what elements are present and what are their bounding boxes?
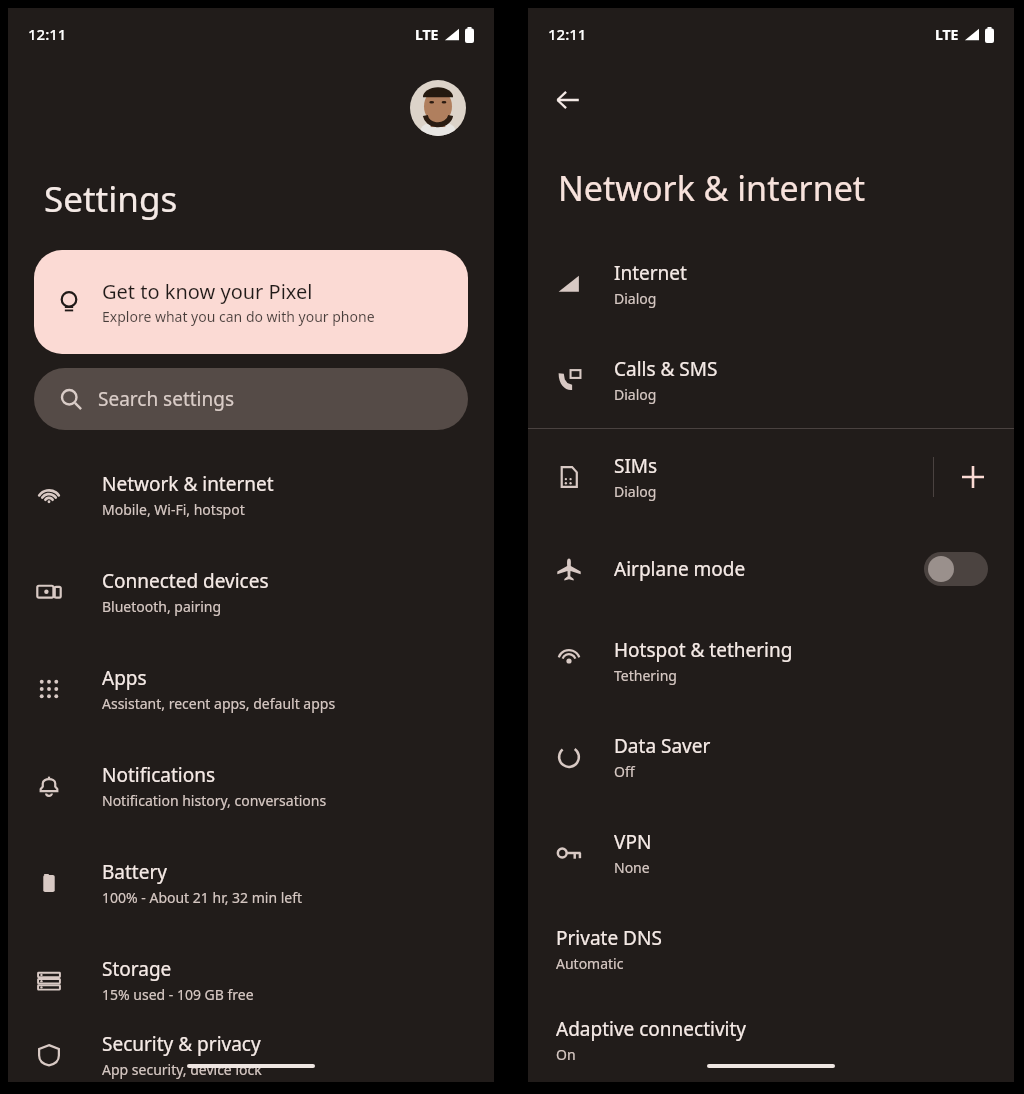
- staticText: Get to know your Pixel: [102, 278, 313, 305]
- button[interactable]: Search settings: [34, 368, 468, 430]
- button[interactable]: Airplane mode: [528, 525, 1014, 613]
- button[interactable]: Hotspot & tethering: [528, 613, 1014, 709]
- button[interactable]: Notifications: [8, 737, 494, 834]
- staticText: Internet: [614, 260, 687, 286]
- staticText: 15% used - 109 GB free: [102, 985, 254, 1004]
- staticText: Notifications: [102, 762, 216, 788]
- button[interactable]: VPN: [528, 805, 1014, 901]
- button[interactable]: Airplane mode toggle: [924, 552, 988, 586]
- staticText: Airplane mode: [614, 556, 746, 582]
- button[interactable]: Battery: [8, 834, 494, 931]
- staticText: Dialog: [614, 385, 657, 404]
- button[interactable]: Adaptive connectivity: [528, 997, 1014, 1082]
- staticText: Settings: [44, 175, 178, 223]
- staticText: VPN: [614, 829, 652, 855]
- button[interactable]: Data Saver: [528, 709, 1014, 805]
- staticText: Mobile, Wi-Fi, hotspot: [102, 500, 245, 519]
- staticText: Explore what you can do with your phone: [102, 307, 375, 326]
- staticText: Hotspot & tethering: [614, 637, 793, 663]
- staticText: Automatic: [556, 954, 624, 973]
- button[interactable]: Connected devices: [8, 543, 494, 640]
- staticText: Dialog: [614, 482, 657, 501]
- staticText: 12:11: [28, 24, 67, 44]
- staticText: Data Saver: [614, 733, 711, 759]
- staticText: Bluetooth, pairing: [102, 597, 222, 616]
- staticText: Private DNS: [556, 925, 662, 951]
- button[interactable]: Apps: [8, 640, 494, 737]
- button[interactable]: Internet: [528, 236, 1014, 332]
- staticText: Calls & SMS: [614, 356, 718, 382]
- staticText: Notification history, conversations: [102, 791, 327, 810]
- button[interactable]: Back: [546, 78, 590, 122]
- button[interactable]: Private DNS: [528, 901, 1014, 997]
- staticText: Security & privacy: [102, 1031, 261, 1057]
- staticText: Storage: [102, 956, 172, 982]
- button[interactable]: Get to know your Pixel: [34, 250, 468, 354]
- staticText: On: [556, 1045, 576, 1064]
- staticText: Search settings: [98, 386, 235, 412]
- staticText: None: [614, 858, 650, 877]
- button[interactable]: SIMs: [528, 429, 1014, 525]
- button[interactable]: Add SIM: [946, 450, 1000, 504]
- staticText: SIMs: [614, 453, 658, 479]
- staticText: Tethering: [614, 666, 677, 685]
- staticText: 12:11: [548, 24, 587, 44]
- staticText: Network & internet: [558, 165, 866, 211]
- staticText: Battery: [102, 859, 167, 885]
- staticText: 100% - About 21 hr, 32 min left: [102, 888, 303, 907]
- staticText: Network & internet: [102, 471, 274, 497]
- staticText: LTE: [415, 25, 439, 44]
- button[interactable]: Calls & SMS: [528, 332, 1014, 428]
- staticText: Dialog: [614, 289, 657, 308]
- button[interactable]: Security & privacy: [8, 1028, 494, 1082]
- button[interactable]: Account avatar: [410, 80, 466, 136]
- staticText: Apps: [102, 665, 147, 691]
- staticText: App security, device lock: [102, 1060, 262, 1079]
- staticText: Assistant, recent apps, default apps: [102, 694, 336, 713]
- staticText: Adaptive connectivity: [556, 1016, 747, 1042]
- staticText: Connected devices: [102, 568, 269, 594]
- button[interactable]: Network & internet: [8, 446, 494, 543]
- staticText: LTE: [935, 25, 959, 44]
- staticText: Off: [614, 762, 635, 781]
- button[interactable]: Storage: [8, 931, 494, 1028]
